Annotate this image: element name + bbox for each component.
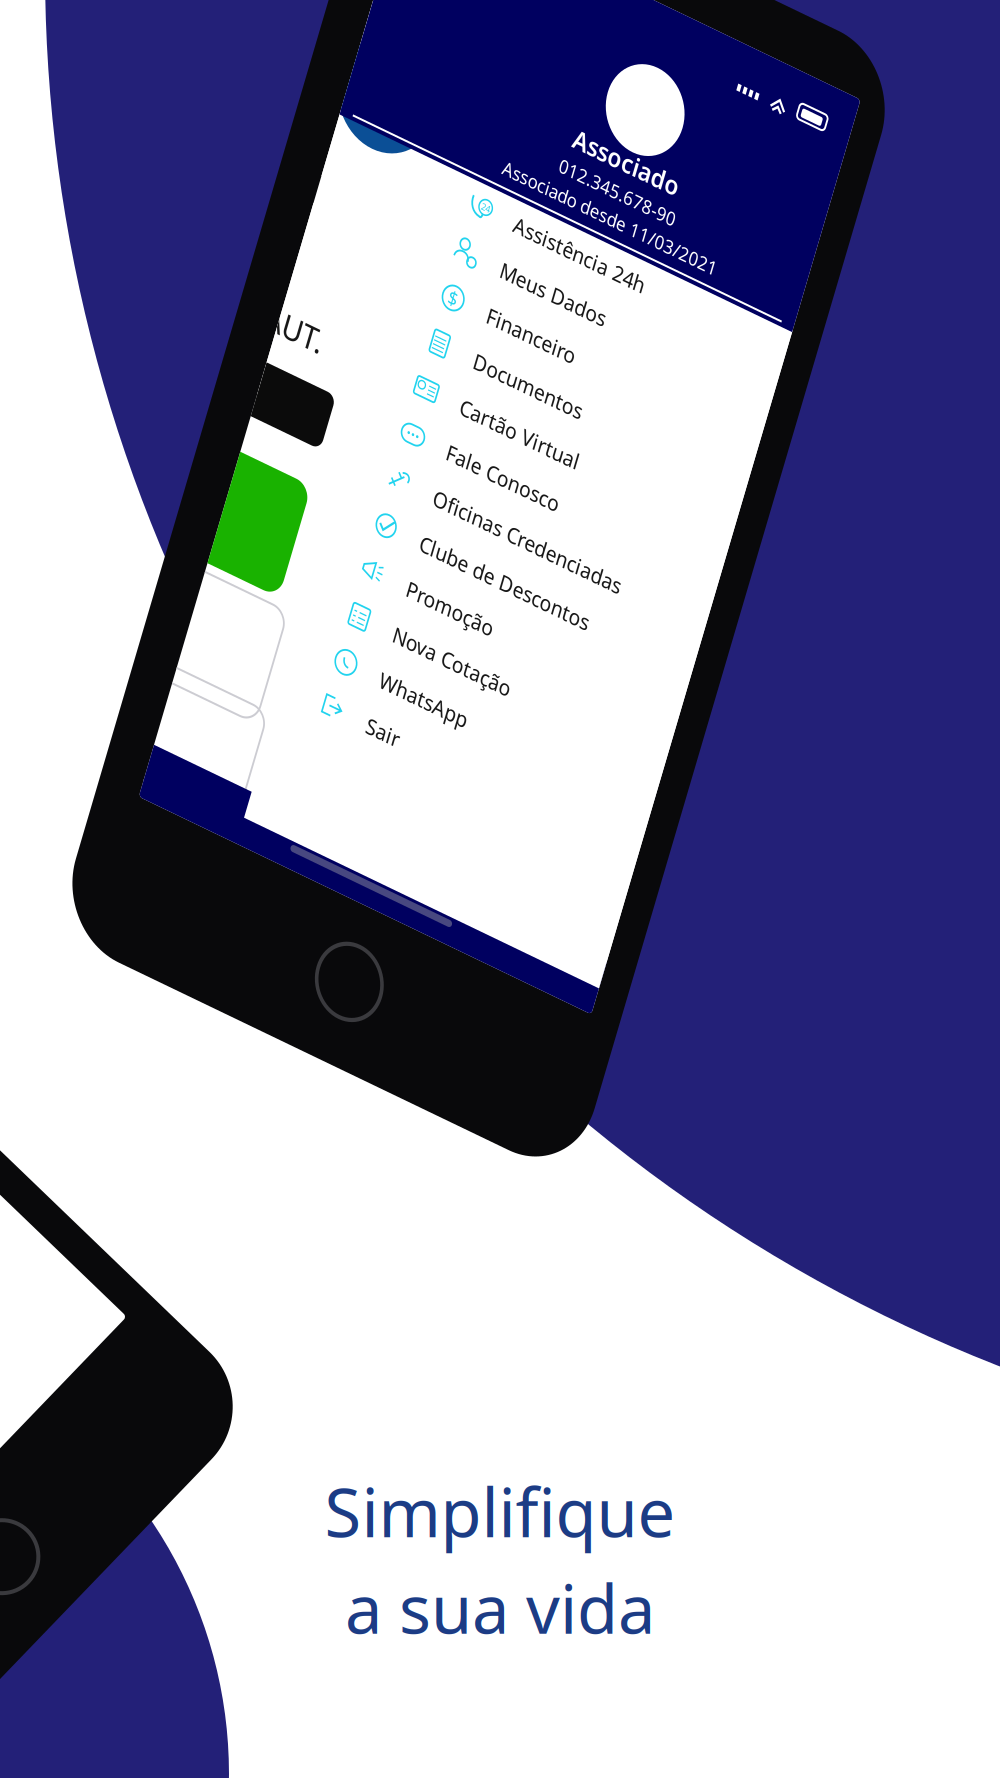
staticText: Meus Dados <box>259 351 383 379</box>
button[interactable]: WhatsApp <box>161 768 579 815</box>
staticText: Sair <box>259 825 298 853</box>
staticText: 012.345.678-90 <box>288 232 425 256</box>
button[interactable]: 24 <box>161 294 579 341</box>
button[interactable]: Oficinas Credenciadas <box>161 578 579 626</box>
staticText: Cartão Virtual <box>259 493 399 521</box>
button[interactable]: Promoção <box>161 673 579 721</box>
button[interactable]: Nova Cotação <box>161 721 579 768</box>
staticText: Nova Cotação <box>259 730 397 758</box>
button[interactable]: Documentos <box>161 436 579 484</box>
staticText: Fale Conosco <box>259 540 391 569</box>
button[interactable]: Cartão Virtual <box>161 484 579 531</box>
staticText: a sua vida <box>345 1563 655 1652</box>
button[interactable]: Sair <box>161 815 579 863</box>
staticText: Promoção <box>259 683 361 711</box>
staticText: Oficinas Credenciadas <box>259 588 480 616</box>
staticText: Documentos <box>259 446 387 474</box>
staticText: Financeiro <box>259 398 363 427</box>
staticText: Assistência 24h <box>259 303 413 332</box>
button[interactable]: Meus Dados <box>161 341 579 389</box>
staticText: Simplifique <box>324 1467 675 1555</box>
button[interactable]: $ <box>161 389 579 436</box>
button[interactable]: Clube de Descontos <box>161 626 579 673</box>
staticText: Associado desde 11/03/2021 <box>230 258 482 283</box>
staticText: Associado <box>294 196 418 230</box>
button[interactable]: Fale Conosco <box>161 531 579 578</box>
staticText: Clube de Descontos <box>259 635 458 664</box>
